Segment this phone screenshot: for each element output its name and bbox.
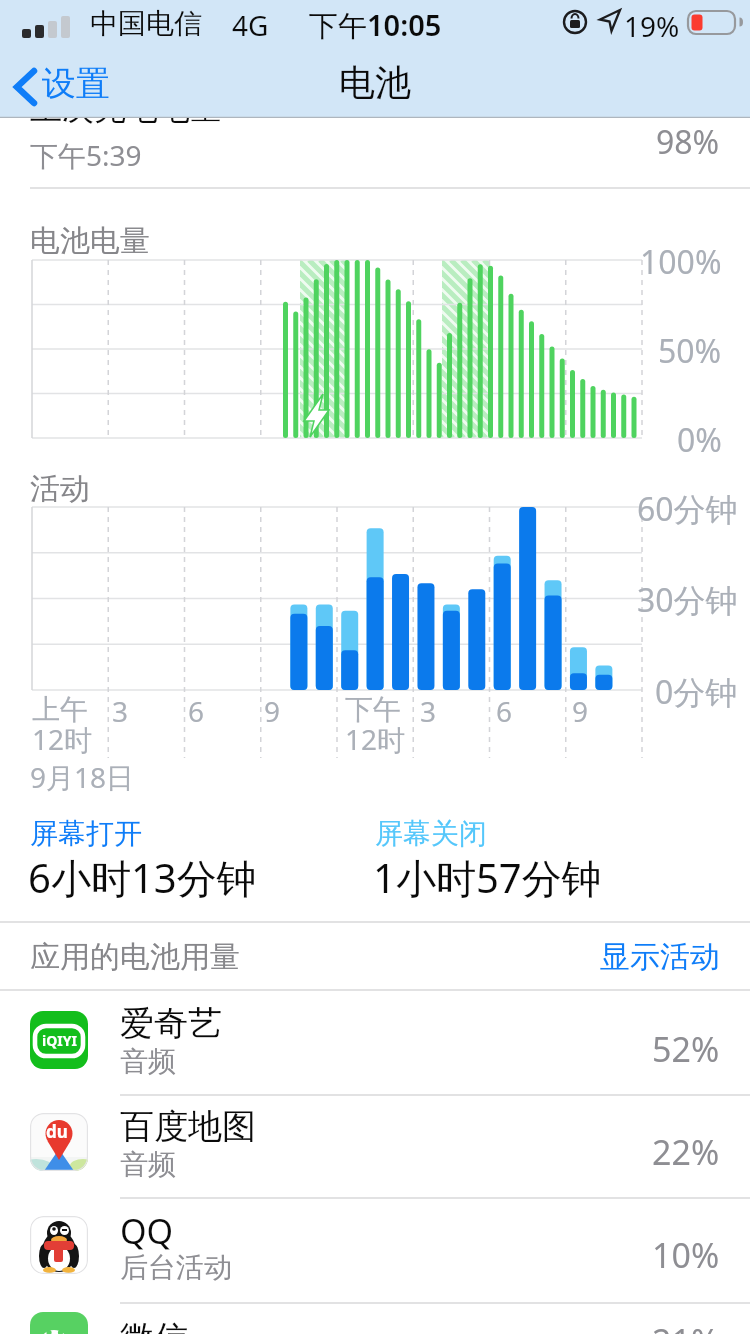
staticText: 9 bbox=[572, 692, 589, 730]
staticText: 6小时13分钟 bbox=[28, 850, 257, 905]
staticText: 6 bbox=[496, 692, 513, 730]
staticText: 12时 bbox=[345, 720, 406, 758]
staticText: 3 bbox=[112, 692, 129, 730]
button[interactable] bbox=[0, 1095, 750, 1198]
staticText: 1小时57分钟 bbox=[373, 850, 602, 905]
staticText: du bbox=[46, 1120, 68, 1143]
staticText: 显示活动 bbox=[600, 938, 720, 976]
staticText: 60分钟 bbox=[637, 487, 738, 531]
staticText: 电池电量 bbox=[30, 222, 150, 260]
staticText: 屏幕关闭 bbox=[375, 816, 487, 851]
staticText: 9月18日 bbox=[30, 758, 135, 796]
staticText: 0% bbox=[677, 418, 722, 462]
button[interactable] bbox=[0, 1198, 750, 1303]
staticText: 电池 bbox=[339, 60, 411, 105]
staticText: 音频 bbox=[120, 1147, 176, 1182]
staticText: 98% bbox=[656, 120, 720, 164]
staticText: 爱奇艺 bbox=[120, 1002, 222, 1045]
staticText: 后台活动 bbox=[120, 1250, 232, 1285]
staticText: iQIYI bbox=[42, 1031, 77, 1050]
staticText: 下午 bbox=[345, 692, 401, 727]
staticText: 12时 bbox=[32, 720, 93, 758]
staticText: 应用的电池用量 bbox=[30, 938, 240, 976]
staticText: 30分钟 bbox=[637, 578, 738, 622]
staticText: 9 bbox=[264, 692, 281, 730]
staticText: 上午 bbox=[32, 692, 88, 727]
button[interactable]: 显示活动 bbox=[0, 932, 726, 982]
staticText: 下午10:05 bbox=[309, 5, 442, 45]
staticText: 4G bbox=[232, 6, 269, 44]
staticText: 52% bbox=[652, 1026, 720, 1072]
staticText: 设置 bbox=[42, 62, 110, 105]
button[interactable] bbox=[0, 1303, 750, 1334]
staticText: 微信 bbox=[120, 1317, 188, 1334]
staticText: 19% bbox=[624, 7, 680, 45]
button[interactable]: 设置 bbox=[40, 60, 112, 107]
staticText: 22% bbox=[652, 1129, 720, 1175]
staticText: 百度地图 bbox=[120, 1105, 256, 1148]
staticText: 3 bbox=[420, 692, 437, 730]
staticText: 屏幕打开 bbox=[30, 816, 142, 851]
staticText: 上次充电电量 bbox=[30, 88, 222, 128]
staticText: 50% bbox=[658, 329, 722, 373]
staticText: 下午5:39 bbox=[30, 136, 142, 174]
staticText: QQ bbox=[120, 1208, 174, 1254]
staticText: 中国电信 bbox=[90, 6, 202, 41]
staticText: 6 bbox=[188, 692, 205, 730]
staticText: 0分钟 bbox=[655, 670, 738, 714]
staticText: 10% bbox=[652, 1232, 720, 1278]
staticText: 活动 bbox=[30, 470, 90, 508]
staticText: 21% bbox=[652, 1318, 720, 1334]
button[interactable] bbox=[0, 992, 750, 1095]
staticText: 100% bbox=[640, 240, 722, 284]
staticText: 音频 bbox=[120, 1044, 176, 1079]
